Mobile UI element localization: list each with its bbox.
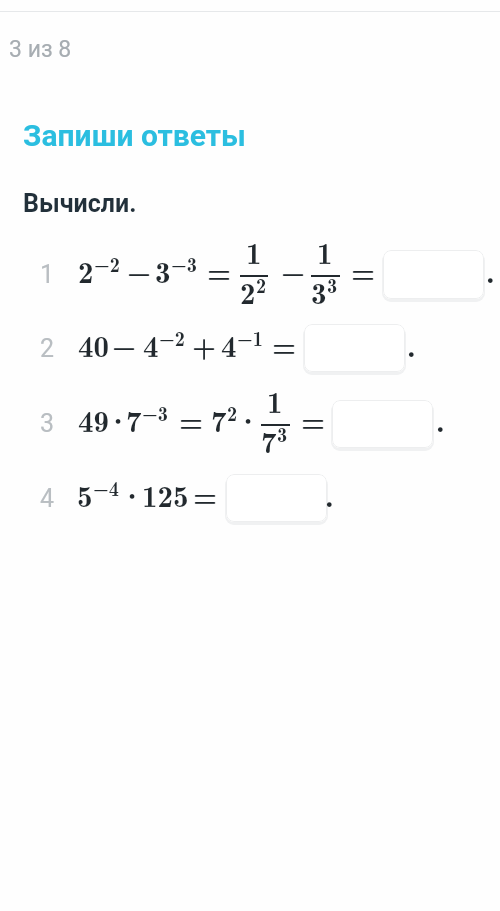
staticText: 3 — [311, 269, 327, 313]
staticText: −4 — [93, 473, 119, 502]
staticText: Запиши ответы — [23, 118, 246, 153]
staticText: = — [193, 472, 218, 516]
staticText: = — [351, 248, 376, 292]
staticText: 3 — [34, 409, 60, 438]
staticText: 7 — [126, 397, 142, 441]
staticText: 40 — [78, 322, 109, 366]
staticText: 125 — [142, 472, 189, 516]
staticText: 2 — [78, 248, 94, 292]
staticText: · — [106, 397, 131, 441]
staticText: −2 — [159, 323, 185, 352]
staticText: 3 из 8 — [9, 36, 72, 63]
staticText: = — [207, 248, 232, 292]
staticText: 2 — [34, 334, 60, 363]
staticText: 3 — [327, 270, 338, 299]
staticText: 2 — [227, 398, 238, 427]
staticText: = — [272, 322, 297, 366]
staticText: = — [301, 397, 326, 441]
button[interactable] — [226, 474, 327, 522]
staticText: 2 — [256, 270, 267, 299]
staticText: 4 — [221, 322, 237, 366]
staticText: · — [120, 472, 145, 516]
staticText: − — [281, 248, 306, 292]
staticText: 1 — [317, 229, 333, 273]
staticText: −3 — [171, 249, 197, 278]
staticText: + — [192, 322, 217, 366]
staticText: 3 — [155, 248, 171, 292]
staticText: . — [407, 322, 416, 366]
staticText: 7 — [261, 418, 277, 462]
staticText: − — [127, 248, 152, 292]
staticText: . — [325, 472, 334, 516]
staticText: −3 — [142, 398, 168, 427]
staticText: · — [236, 397, 261, 441]
staticText: 1 — [267, 378, 283, 422]
staticText: 49 — [78, 397, 109, 441]
staticText: 7 — [211, 397, 227, 441]
staticText: = — [179, 397, 204, 441]
staticText: . — [486, 248, 495, 292]
button[interactable] — [304, 324, 405, 372]
staticText: 5 — [77, 472, 93, 516]
staticText: Вычисли. — [23, 189, 137, 218]
staticText: 4 — [143, 322, 159, 366]
staticText: 2 — [240, 269, 256, 313]
staticText: 1 — [34, 260, 60, 289]
staticText: 4 — [34, 484, 60, 513]
staticText: −1 — [237, 323, 263, 352]
staticText: − — [112, 322, 137, 366]
staticText: −2 — [94, 249, 120, 278]
staticText: . — [436, 397, 445, 441]
staticText: 3 — [277, 419, 288, 448]
staticText: 1 — [246, 229, 262, 273]
button[interactable] — [383, 250, 484, 299]
button[interactable] — [332, 400, 433, 448]
